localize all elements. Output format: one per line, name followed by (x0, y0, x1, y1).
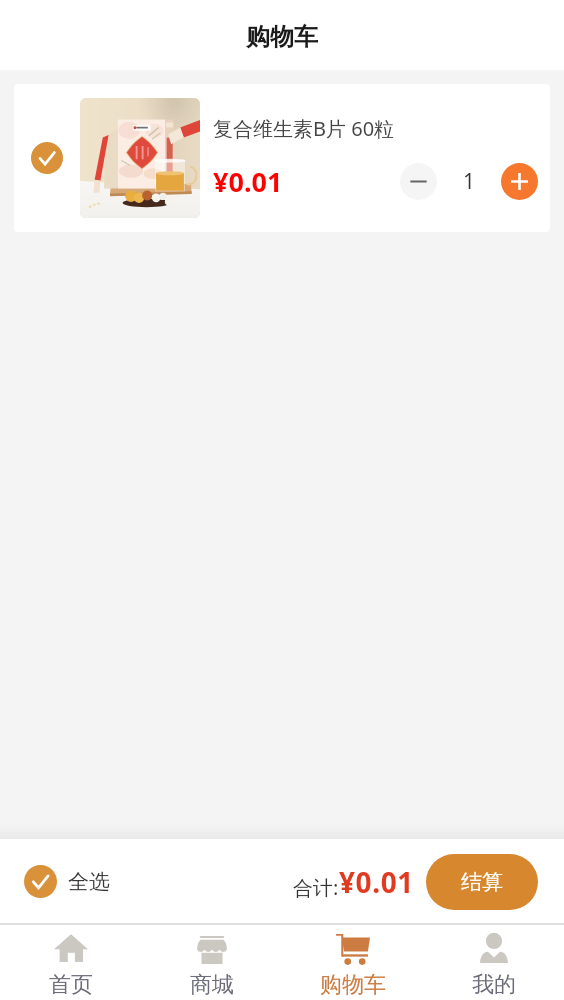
button[interactable]: 购物车 (282, 925, 423, 1000)
button[interactable]: 首页 (0, 925, 141, 1000)
button[interactable]: 我的 (423, 925, 564, 1000)
button[interactable]: Increase quantity (501, 163, 538, 200)
staticText: 复合维生素B片 60粒 (213, 115, 395, 142)
staticText: 首页 (49, 971, 93, 999)
staticText: 合计: (293, 874, 339, 901)
staticText: ¥0.01 (339, 863, 414, 901)
button[interactable]: 全选 (24, 865, 110, 898)
staticText: 我的 (472, 971, 516, 999)
staticText: ¥0.01 (213, 163, 283, 200)
staticText: 全选 (68, 869, 110, 895)
button[interactable]: Select item (14, 84, 550, 232)
button[interactable]: 结算 (426, 854, 538, 910)
staticText: 购物车 (246, 22, 318, 52)
staticText: 商城 (190, 971, 234, 999)
staticText: 1 (463, 167, 476, 196)
staticText: 结算 (461, 869, 503, 895)
staticText: 购物车 (320, 971, 386, 999)
button[interactable]: 商城 (141, 925, 282, 1000)
button[interactable]: Decrease quantity (400, 163, 437, 200)
button[interactable]: Select item (14, 84, 80, 232)
